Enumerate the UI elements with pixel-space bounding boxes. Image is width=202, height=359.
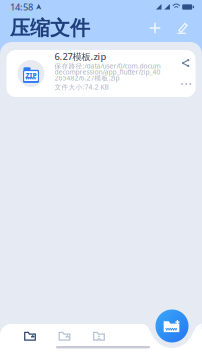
- staticText: ZIP: [26, 71, 37, 80]
- staticText: 保存路径:/data/user/0/com.docum: [54, 62, 160, 70]
- button[interactable]: New archive: [155, 309, 188, 342]
- button[interactable]: Shared: [84, 324, 114, 348]
- button[interactable]: Archives: [15, 324, 45, 348]
- button[interactable]: ZIP: [6, 50, 195, 97]
- staticText: 265482/6.27模板.zip: [54, 74, 119, 82]
- staticText: 文件大小:74.2 KB: [54, 83, 108, 91]
- staticText: decompression/app_flutter/zip_40: [54, 68, 160, 76]
- staticText: 14:58: [10, 1, 33, 13]
- button[interactable]: Files: [49, 324, 79, 348]
- staticText: 压缩文件: [10, 16, 90, 40]
- button[interactable]: Edit: [171, 17, 193, 39]
- button[interactable]: Add: [144, 17, 166, 39]
- staticText: 6.27模板.zip: [54, 50, 106, 63]
